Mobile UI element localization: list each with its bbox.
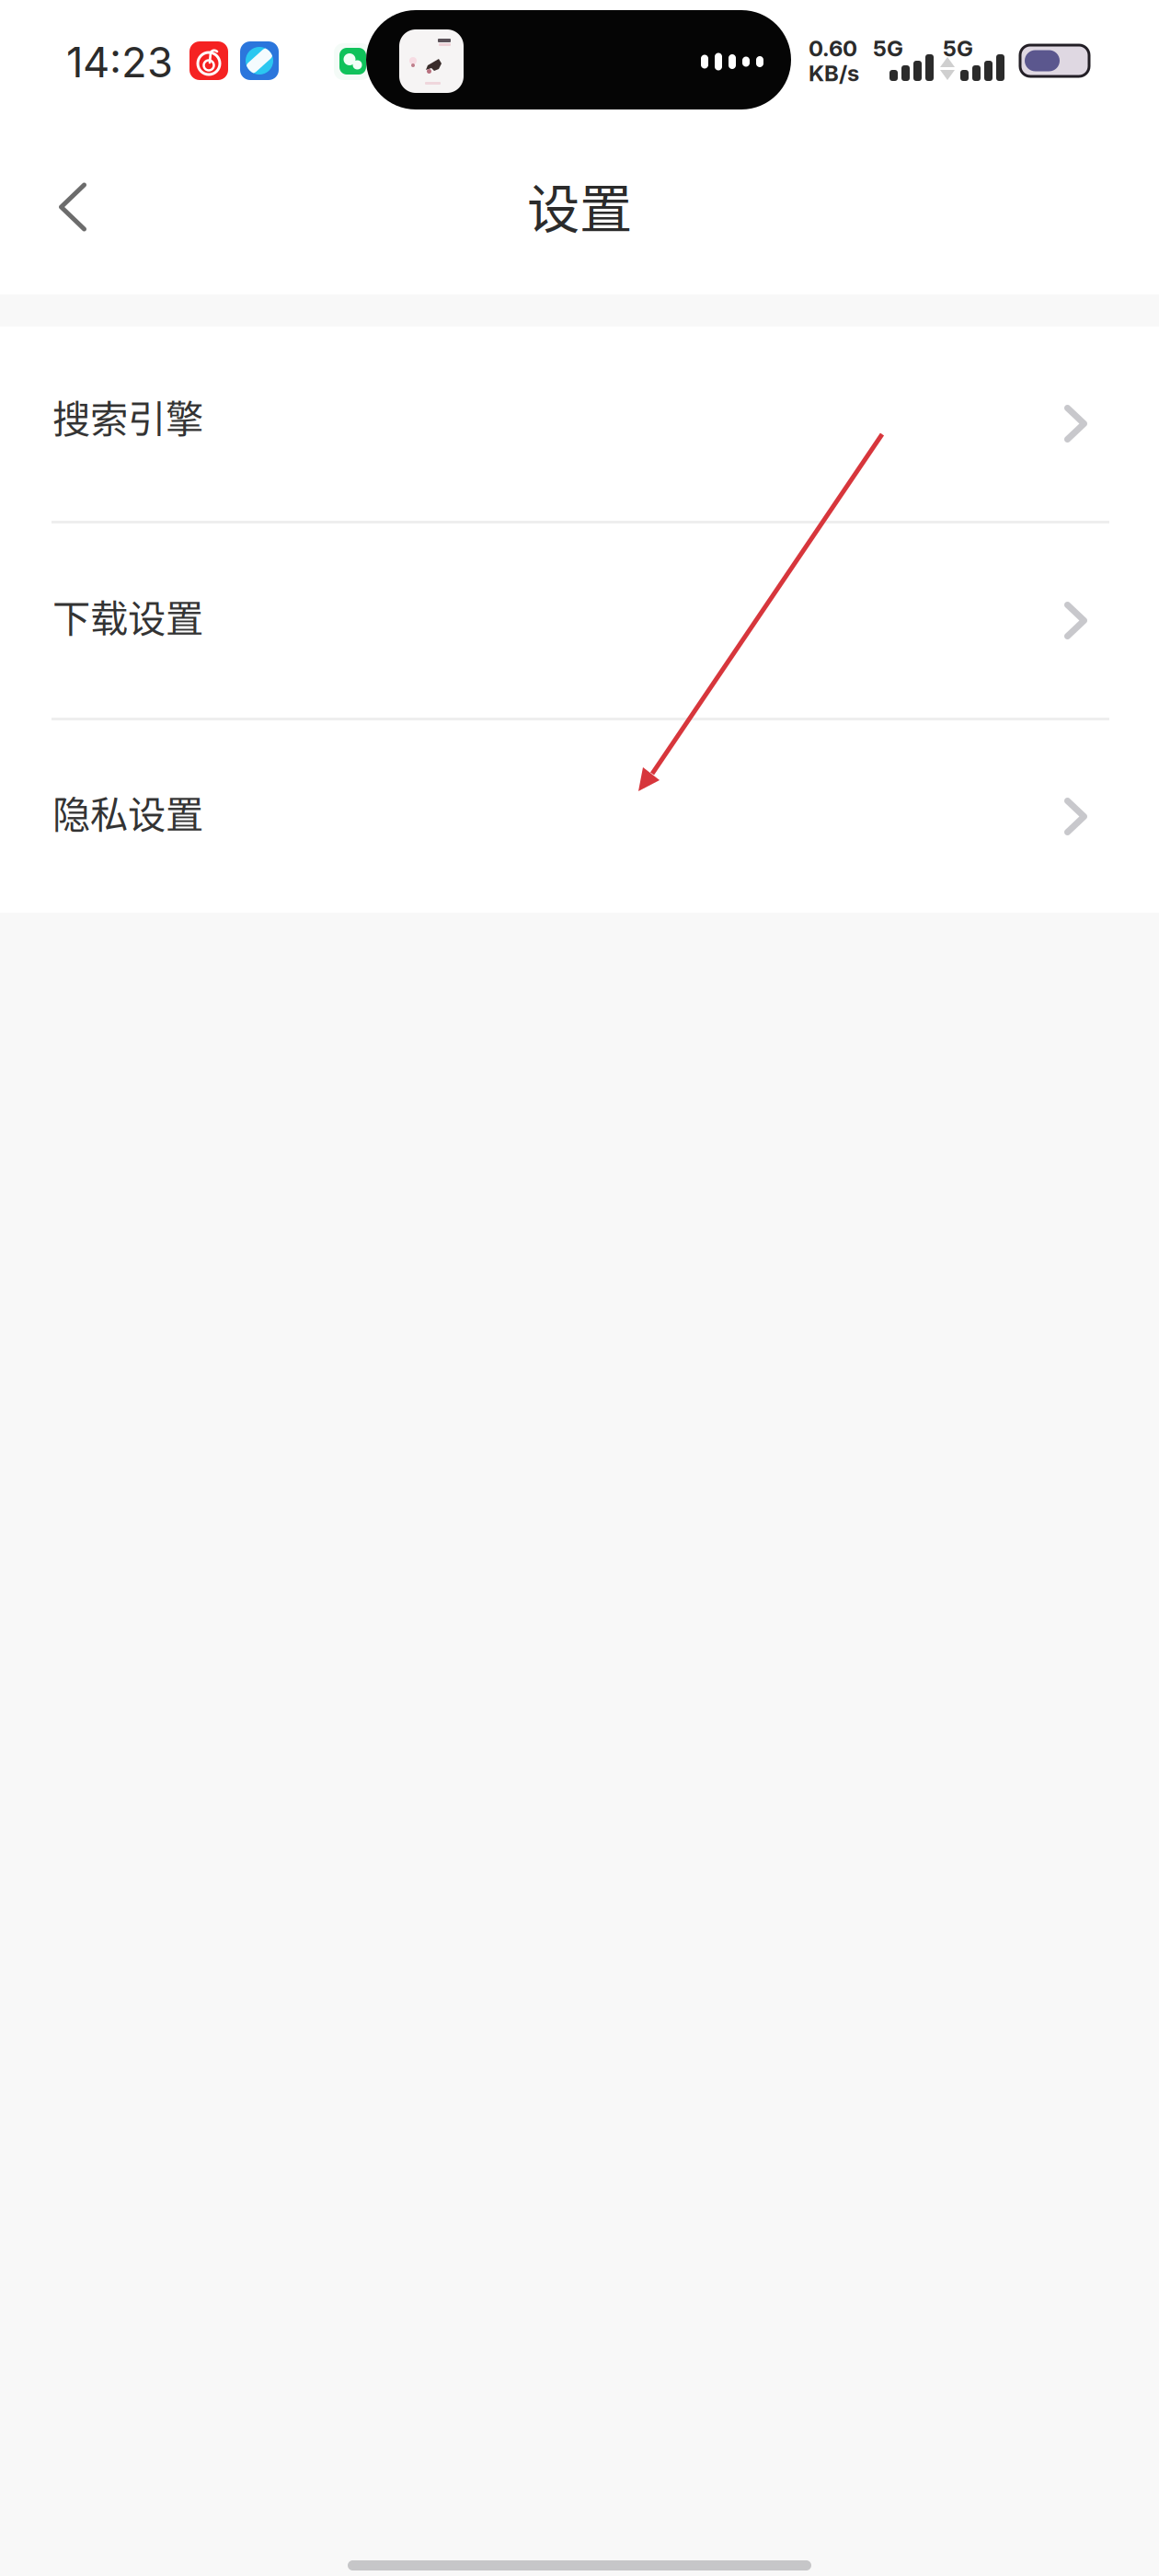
staticText: 0.60 — [809, 35, 857, 62]
staticText: 设置 — [527, 167, 632, 243]
staticText: 搜索引擎 — [52, 389, 203, 444]
staticText: 下载设置 — [52, 588, 203, 644]
staticText: 14:23 — [66, 37, 173, 87]
button[interactable]: 隐私设置 — [0, 720, 1159, 913]
staticText: KB/s — [809, 60, 859, 86]
button[interactable]: 下载设置 — [0, 523, 1159, 718]
staticText: 5G — [943, 35, 973, 62]
staticText: 隐私设置 — [52, 784, 203, 839]
button[interactable]: 搜索引擎 — [0, 327, 1159, 521]
staticText: 5G — [873, 35, 903, 62]
button[interactable]: Back — [17, 152, 128, 262]
